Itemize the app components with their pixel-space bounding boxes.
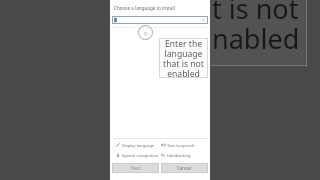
staticText: Cancel [177, 165, 192, 171]
staticText: Display language [122, 143, 155, 148]
button[interactable]: Next [112, 163, 159, 173]
button[interactable]: Enter the language that is not enabled [159, 38, 208, 78]
button[interactable]: Display language [116, 140, 155, 150]
button[interactable]: Text-to-speech [161, 140, 195, 150]
staticText: t is not nabled [212, 0, 300, 56]
staticText: Choose a language to install [114, 5, 175, 11]
other: Tap indicator [138, 25, 153, 40]
staticText: Enter the language that is not enabled [159, 38, 208, 78]
staticText: Next [131, 165, 141, 171]
button[interactable]: Language search field [112, 16, 208, 24]
button[interactable]: Cancel [161, 163, 208, 173]
staticText: Text-to-speech [167, 143, 195, 148]
button[interactable]: Speech recognition [116, 150, 159, 160]
button[interactable]: Handwriting [161, 150, 191, 160]
staticText: Speech recognition [122, 153, 159, 158]
staticText: Handwriting [167, 153, 191, 158]
